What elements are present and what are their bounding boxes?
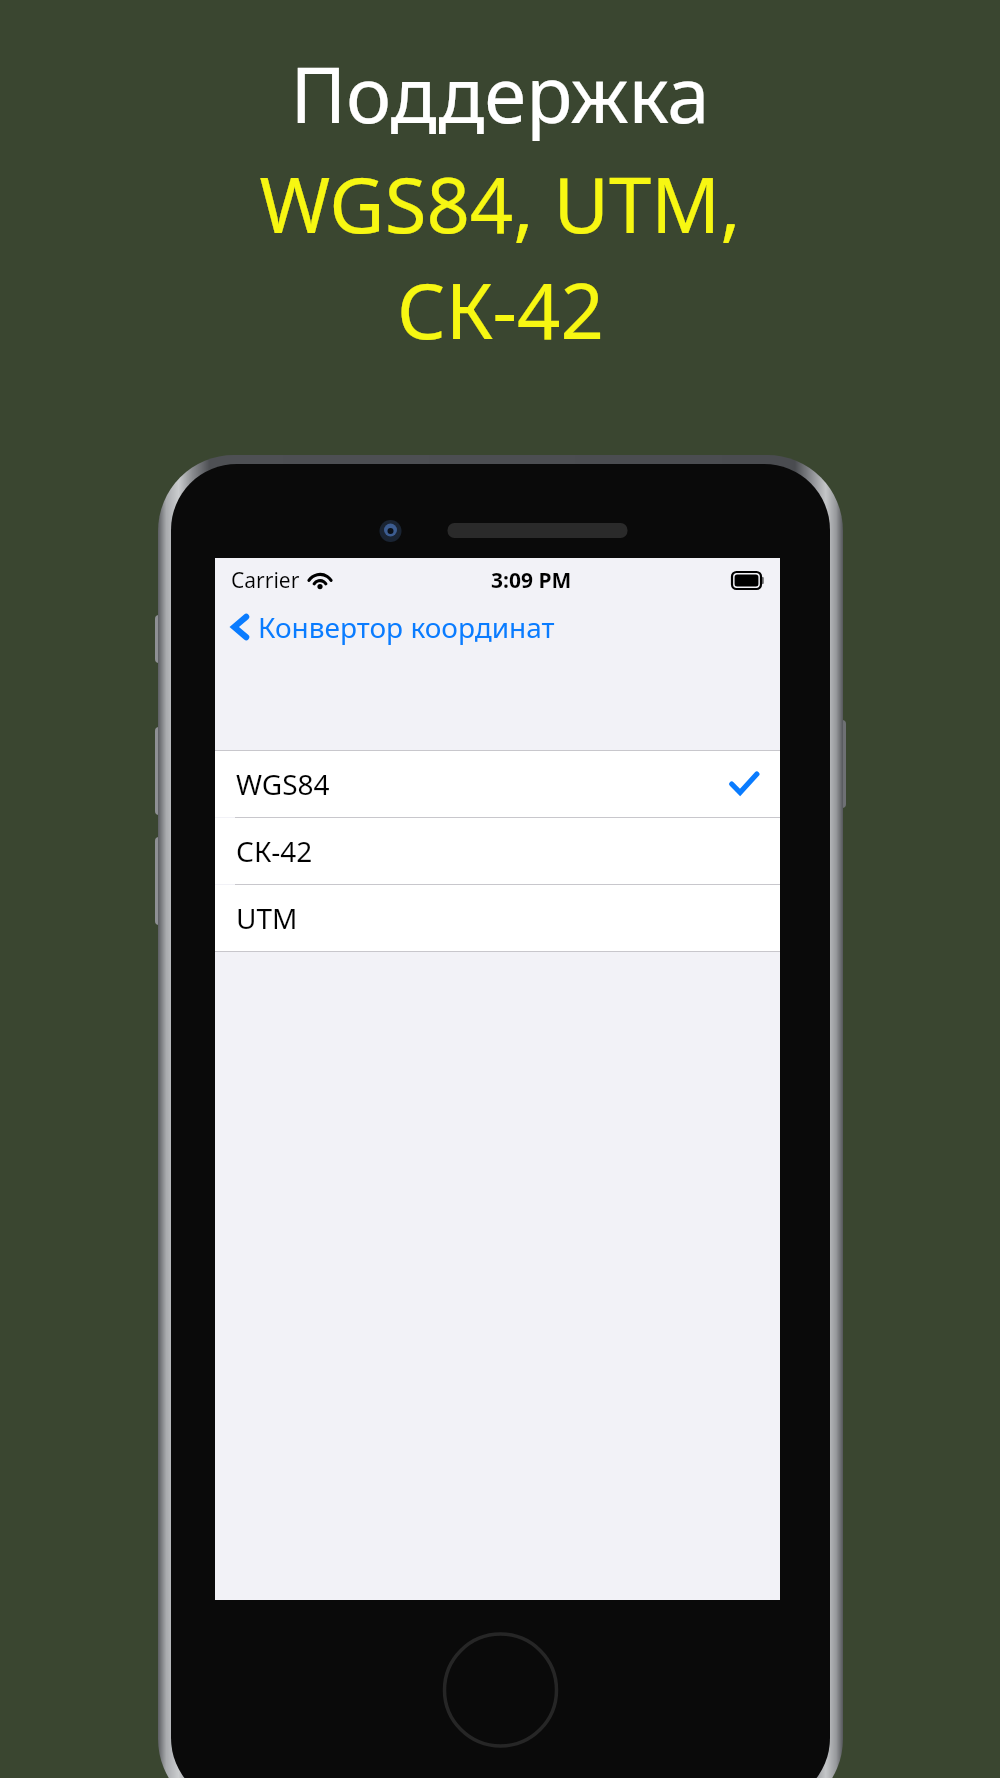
button[interactable]: WGS84 — [215, 751, 780, 817]
staticText: 3:09 PM — [491, 566, 572, 595]
staticText: Поддержка — [290, 42, 710, 146]
staticText: СК-42 — [236, 832, 313, 870]
button[interactable]: СК-42 — [215, 818, 780, 884]
staticText: Carrier — [231, 566, 300, 595]
staticText: UTM — [236, 899, 298, 937]
staticText: СК-42 — [397, 258, 604, 362]
button[interactable]: Back — [215, 602, 780, 652]
button[interactable]: UTM — [215, 885, 780, 951]
other: Back — [229, 610, 251, 644]
staticText: WGS84, UTM, — [259, 152, 741, 256]
staticText: WGS84 — [236, 765, 330, 803]
staticText: Конвертор координат — [258, 608, 555, 646]
